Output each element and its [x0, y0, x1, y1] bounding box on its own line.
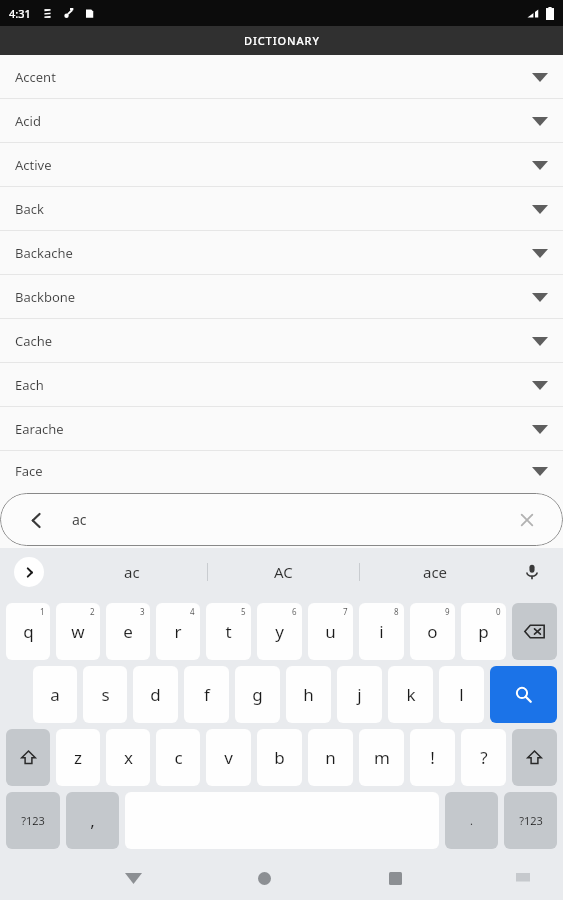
- staticText: j: [357, 683, 362, 706]
- button[interactable]: Back: [20, 504, 52, 536]
- button[interactable]: Home: [244, 858, 284, 898]
- button[interactable]: g: [235, 666, 280, 723]
- staticText: Face: [15, 462, 43, 480]
- staticText: ?123: [519, 813, 543, 828]
- button[interactable]: j: [337, 666, 382, 723]
- button[interactable]: Cache: [0, 319, 563, 363]
- staticText: Earache: [15, 420, 64, 438]
- staticText: ace: [423, 562, 448, 582]
- staticText: m: [374, 746, 390, 769]
- button[interactable]: Face: [0, 451, 563, 491]
- button[interactable]: c: [156, 729, 200, 786]
- staticText: 2: [90, 606, 95, 617]
- button[interactable]: ?: [461, 729, 506, 786]
- staticText: Acid: [15, 112, 41, 130]
- button[interactable]: y: [257, 603, 302, 660]
- button[interactable]: More suggestions: [14, 557, 44, 587]
- button[interactable]: u: [308, 603, 353, 660]
- staticText: 3: [140, 606, 145, 617]
- staticText: 4: [190, 606, 195, 617]
- staticText: d: [150, 683, 161, 706]
- staticText: ,: [90, 809, 95, 832]
- button[interactable]: o: [410, 603, 455, 660]
- button[interactable]: k: [388, 666, 433, 723]
- staticText: h: [303, 683, 314, 706]
- staticText: Each: [15, 376, 44, 394]
- staticText: 9: [445, 606, 450, 617]
- button[interactable]: r: [156, 603, 200, 660]
- button[interactable]: w: [56, 603, 100, 660]
- button[interactable]: Active: [0, 143, 563, 187]
- button[interactable]: Back: [0, 493, 563, 546]
- button[interactable]: p: [461, 603, 506, 660]
- button[interactable]: q: [6, 603, 50, 660]
- staticText: !: [430, 746, 435, 769]
- staticText: t: [225, 620, 232, 643]
- button[interactable]: b: [257, 729, 302, 786]
- staticText: ?: [480, 746, 488, 769]
- button[interactable]: Clear: [511, 504, 543, 536]
- button[interactable]: ac: [56, 548, 207, 596]
- button[interactable]: Switch keyboard: [506, 861, 540, 895]
- button[interactable]: Shift: [6, 729, 50, 786]
- button[interactable]: s: [83, 666, 127, 723]
- button[interactable]: ?123: [6, 792, 60, 849]
- button[interactable]: Recents: [375, 858, 415, 898]
- staticText: 4:31: [9, 6, 31, 21]
- button[interactable]: Back: [113, 858, 153, 898]
- button[interactable]: Backache: [0, 231, 563, 275]
- staticText: r: [174, 620, 182, 643]
- button[interactable]: Backspace: [512, 603, 557, 660]
- staticText: 8: [394, 606, 399, 617]
- staticText: f: [204, 683, 210, 706]
- button[interactable]: t: [206, 603, 251, 660]
- button[interactable]: Shift: [512, 729, 557, 786]
- button[interactable]: AC: [208, 548, 359, 596]
- button[interactable]: ?123: [504, 792, 557, 849]
- button[interactable]: Backbone: [0, 275, 563, 319]
- button[interactable]: .: [445, 792, 498, 849]
- staticText: AC: [274, 562, 293, 582]
- button[interactable]: f: [184, 666, 229, 723]
- button[interactable]: ace: [360, 548, 511, 596]
- button[interactable]: m: [359, 729, 404, 786]
- button[interactable]: Back: [0, 187, 563, 231]
- staticText: i: [379, 620, 384, 643]
- staticText: Cache: [15, 332, 53, 350]
- staticText: 7: [343, 606, 348, 617]
- button[interactable]: n: [308, 729, 353, 786]
- staticText: a: [50, 683, 60, 706]
- staticText: Accent: [15, 68, 56, 86]
- button[interactable]: Acid: [0, 99, 563, 143]
- button[interactable]: x: [106, 729, 150, 786]
- staticText: n: [325, 746, 336, 769]
- button[interactable]: e: [106, 603, 150, 660]
- staticText: k: [406, 683, 416, 706]
- button[interactable]: v: [206, 729, 251, 786]
- staticText: g: [252, 683, 263, 706]
- staticText: ?123: [21, 813, 45, 828]
- staticText: c: [174, 746, 183, 769]
- button[interactable]: h: [286, 666, 331, 723]
- button[interactable]: l: [439, 666, 484, 723]
- staticText: z: [74, 746, 82, 769]
- button[interactable]: z: [56, 729, 100, 786]
- button[interactable]: d: [133, 666, 178, 723]
- staticText: s: [101, 683, 110, 706]
- staticText: b: [274, 746, 285, 769]
- button[interactable]: a: [33, 666, 77, 723]
- button[interactable]: !: [410, 729, 455, 786]
- staticText: ac: [124, 562, 140, 582]
- button[interactable]: Voice input: [517, 557, 547, 587]
- button[interactable]: ,: [66, 792, 119, 849]
- staticText: 0: [496, 606, 501, 617]
- staticText: x: [124, 746, 133, 769]
- staticText: l: [459, 683, 464, 706]
- button[interactable]: Accent: [0, 55, 563, 99]
- button[interactable]: Search: [490, 666, 557, 723]
- button[interactable]: Each: [0, 363, 563, 407]
- button[interactable]: Earache: [0, 407, 563, 451]
- staticText: ac: [72, 510, 87, 529]
- button[interactable]: i: [359, 603, 404, 660]
